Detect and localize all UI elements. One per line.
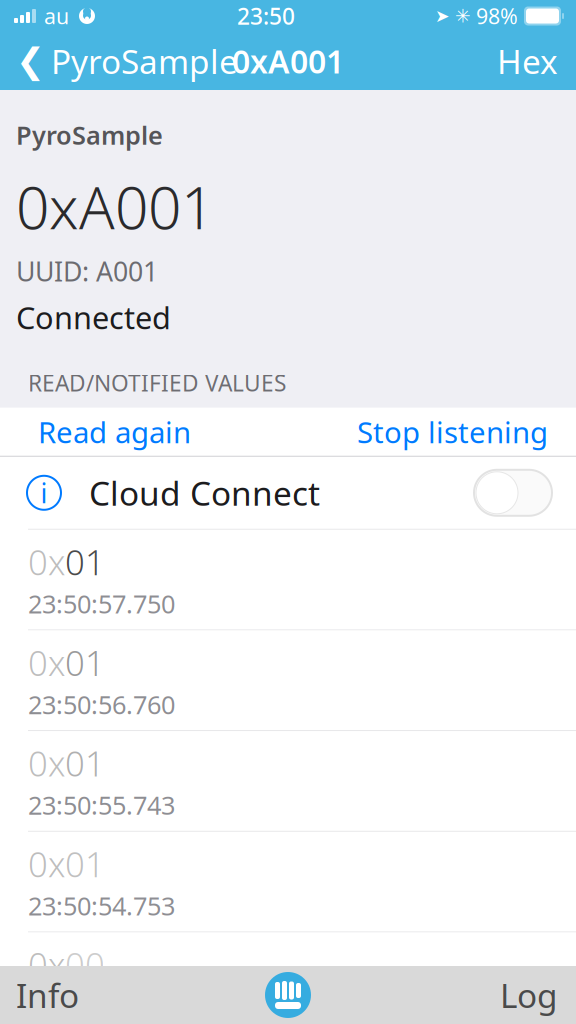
- staticText: 23:50: [237, 1, 295, 31]
- button[interactable]: 0x: [0, 530, 576, 629]
- staticText: Log: [500, 973, 558, 1017]
- staticText: 23:50:55.743: [28, 788, 175, 822]
- staticText: 23:50:54.753: [28, 889, 175, 922]
- button[interactable]: Scan: [259, 966, 317, 1024]
- button[interactable]: Log: [500, 961, 576, 1024]
- staticText: 01: [65, 740, 105, 786]
- button[interactable]: Stop listening: [357, 402, 576, 461]
- staticText: Read again: [38, 412, 191, 451]
- staticText: 0xA001: [16, 168, 214, 245]
- staticText: 0x: [28, 639, 65, 685]
- staticText: 23:50:53.763: [28, 989, 175, 1023]
- staticText: 01: [65, 841, 105, 887]
- staticText: 0x: [28, 941, 65, 987]
- button[interactable]: 0x: [0, 630, 576, 730]
- staticText: 01: [65, 539, 105, 585]
- staticText: Info: [16, 973, 79, 1017]
- button[interactable]: Read again: [0, 402, 191, 461]
- staticText: 0x: [28, 740, 65, 786]
- staticText: ➤: [435, 6, 450, 26]
- button[interactable]: Info: [0, 961, 79, 1024]
- staticText: Connected: [16, 297, 171, 338]
- staticText: 00: [65, 941, 105, 987]
- staticText: 23:50:57.750: [28, 587, 175, 620]
- staticText: ❮: [16, 41, 45, 81]
- staticText: ✳: [455, 5, 471, 27]
- staticText: PyroSample: [16, 118, 163, 152]
- staticText: Hex: [497, 39, 558, 83]
- staticText: 0x: [28, 841, 65, 887]
- staticText: 01: [65, 639, 105, 685]
- staticText: Cloud Connect: [89, 471, 320, 515]
- staticText: 0x: [28, 539, 65, 585]
- button[interactable]: ❮: [0, 31, 238, 91]
- staticText: 0xA001: [232, 40, 344, 82]
- button[interactable]: i: [0, 457, 576, 529]
- staticText: Stop listening: [357, 412, 548, 451]
- button[interactable]: 0x: [0, 832, 576, 931]
- button[interactable]: Hex: [497, 31, 576, 91]
- staticText: PyroSample: [51, 39, 238, 83]
- staticText: i: [40, 475, 47, 510]
- button[interactable]: 0x: [0, 731, 576, 831]
- button[interactable]: 0x: [0, 932, 576, 1024]
- staticText: 23:50:56.760: [28, 687, 175, 721]
- staticText: 98%: [476, 2, 518, 30]
- staticText: UUID: A001: [16, 253, 158, 289]
- staticText: READ/NOTIFIED VALUES: [28, 368, 286, 398]
- staticText: au: [44, 2, 69, 30]
